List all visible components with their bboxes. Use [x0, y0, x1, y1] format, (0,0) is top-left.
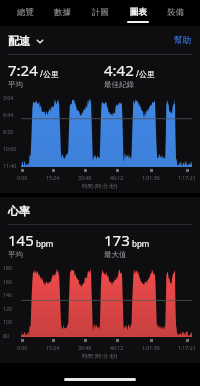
staticText: 173 — [104, 230, 130, 250]
staticText: 46:12 — [110, 344, 124, 351]
button[interactable]: 配速 — [8, 34, 45, 48]
other: Change metric — [35, 36, 45, 46]
staticText: 140 — [3, 291, 12, 298]
staticText: 總覽 — [17, 7, 34, 18]
staticText: 數據 — [54, 7, 71, 18]
staticText: 8:20 — [3, 128, 14, 135]
button[interactable]: 計圖 — [87, 7, 113, 23]
staticText: /公里 — [40, 68, 59, 79]
staticText: 圖表 — [130, 7, 147, 18]
staticText: 6:44 — [3, 111, 14, 118]
staticText: 160 — [3, 278, 12, 285]
staticText: 0:00 — [17, 174, 28, 181]
staticText: 1:17:21 — [178, 174, 196, 181]
staticText: 100 — [3, 318, 12, 325]
staticText: 平均 — [8, 250, 23, 259]
staticText: bpm — [36, 238, 54, 249]
staticText: 46:12 — [110, 174, 124, 181]
staticText: 1:01:36 — [142, 174, 160, 181]
staticText: 時間 (時:分:秒) — [82, 182, 118, 190]
staticText: 時間 (時:分:秒) — [82, 352, 118, 360]
staticText: 80 — [3, 332, 9, 339]
staticText: bpm — [132, 238, 150, 249]
staticText: 1:17:21 — [178, 344, 196, 351]
button[interactable]: 總覽 — [12, 7, 38, 23]
staticText: 心率 — [8, 204, 30, 218]
staticText: 計圖 — [92, 7, 109, 18]
staticText: 145 — [8, 230, 34, 250]
staticText: 配速 — [8, 34, 30, 48]
staticText: 裝備 — [167, 7, 184, 18]
staticText: 最大值 — [104, 250, 127, 259]
staticText: 10:00 — [3, 145, 17, 152]
staticText: 15:24 — [46, 174, 60, 181]
staticText: 7:24 — [8, 60, 38, 80]
staticText: 1:01:36 — [142, 344, 160, 351]
staticText: 平均 — [8, 80, 23, 89]
staticText: 120 — [3, 305, 12, 312]
staticText: 0:00 — [17, 344, 28, 351]
button[interactable]: 幫助 — [172, 33, 193, 48]
staticText: 幫助 — [174, 35, 191, 46]
button[interactable]: 圖表 — [125, 7, 151, 23]
staticText: 180 — [3, 264, 12, 271]
staticText: /公里 — [136, 68, 155, 79]
staticText: 最佳紀錄 — [104, 80, 134, 89]
button[interactable]: 心率 — [8, 204, 30, 218]
button[interactable]: 裝備 — [162, 7, 188, 23]
staticText: 15:24 — [46, 344, 60, 351]
button[interactable]: 數據 — [49, 7, 75, 23]
staticText: 30:48 — [78, 174, 92, 181]
staticText: 4:42 — [104, 60, 134, 80]
staticText: 3:04 — [3, 94, 14, 101]
staticText: 11:40 — [3, 162, 17, 169]
staticText: 30:48 — [78, 344, 92, 351]
